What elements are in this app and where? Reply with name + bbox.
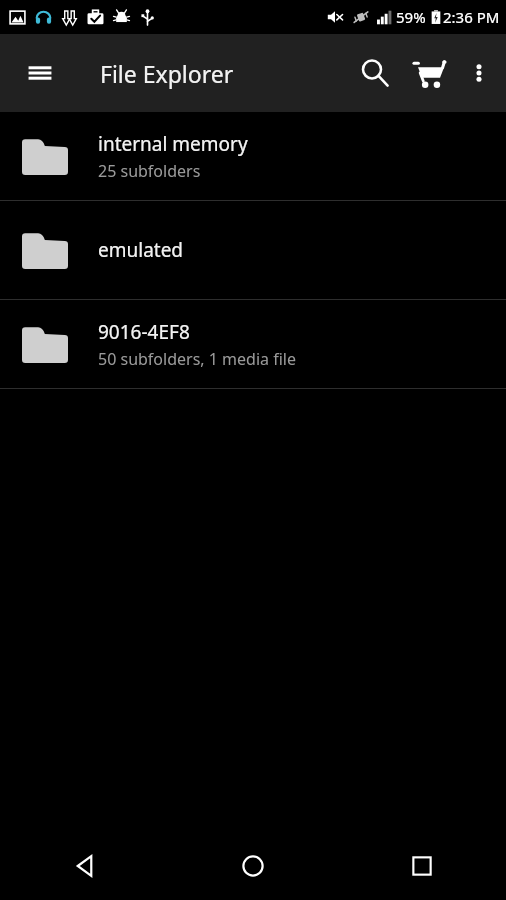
button[interactable]: Home — [168, 832, 337, 900]
staticText: 25 subfolders — [98, 160, 201, 182]
button[interactable]: Shop — [402, 46, 456, 100]
staticText: emulated — [98, 237, 184, 263]
staticText: 9016-4EF8 — [98, 319, 190, 345]
button[interactable]: Recent apps — [337, 832, 506, 900]
staticText: 59% — [396, 7, 426, 27]
button[interactable]: internal memory — [0, 112, 506, 200]
button[interactable]: emulated — [0, 201, 506, 299]
button[interactable]: 9016-4EF8 — [0, 300, 506, 388]
button[interactable]: Back — [0, 832, 168, 900]
staticText: File Explorer — [100, 58, 234, 89]
staticText: 50 subfolders, 1 media file — [98, 348, 296, 370]
staticText: 2:36 PM — [443, 7, 500, 27]
button[interactable]: Open navigation drawer — [14, 47, 66, 99]
button[interactable]: Search — [348, 46, 402, 100]
button[interactable]: More options — [456, 50, 502, 96]
staticText: internal memory — [98, 131, 248, 157]
